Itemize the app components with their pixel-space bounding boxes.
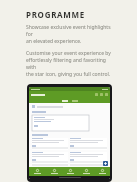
button[interactable]: Nav 3 [78,167,94,176]
button[interactable] [70,100,80,102]
staticText: Showcase exclusive event highlights for … [26,24,117,45]
staticText: Customise your event experience by effor… [26,50,117,78]
button[interactable] [70,152,107,164]
button[interactable]: Nav 4 [94,167,110,176]
staticText: PROGRAMME [26,9,85,20]
button[interactable]: Action [100,93,103,96]
button[interactable] [32,152,68,164]
button[interactable] [32,105,107,108]
button[interactable]: Nav 1 [46,167,62,176]
button[interactable]: Nav 0 [29,167,46,176]
button[interactable]: Nav 2 [62,167,78,176]
button[interactable] [60,100,70,102]
button[interactable]: Add [103,161,108,166]
button[interactable]: Action [95,93,98,96]
button[interactable] [32,115,89,131]
button[interactable] [32,138,68,150]
button[interactable]: Action [105,93,108,96]
button[interactable] [70,138,107,150]
